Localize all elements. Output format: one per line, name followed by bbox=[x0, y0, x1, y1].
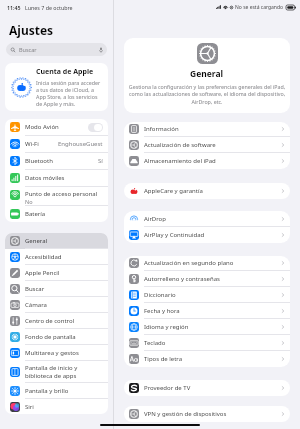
staticText: Siri bbox=[25, 403, 34, 411]
button[interactable]: Buscar bbox=[5, 281, 108, 296]
button[interactable]: Fecha y hora bbox=[124, 303, 290, 318]
staticText: Lunes 7 de octubre bbox=[25, 4, 73, 11]
staticText: AirDrop bbox=[144, 215, 281, 223]
button[interactable]: VPN y gestión de dispositivos bbox=[124, 406, 290, 422]
button[interactable]: Bluetooth bbox=[5, 153, 108, 169]
button[interactable]: Apple Pencil bbox=[5, 265, 108, 280]
button[interactable]: AppleCare y garantía bbox=[124, 183, 290, 199]
button[interactable]: General bbox=[5, 233, 108, 248]
button[interactable]: Modo Avión bbox=[5, 119, 108, 135]
button[interactable]: Teclado bbox=[124, 335, 290, 350]
staticText: Pantalla de inicio y biblioteca de apps bbox=[25, 364, 103, 380]
staticText: Apple Pencil bbox=[25, 269, 60, 277]
staticText: Accesibilidad bbox=[25, 253, 62, 261]
button[interactable]: Siri bbox=[5, 399, 108, 414]
button[interactable]: Wi-Fi bbox=[5, 136, 108, 152]
staticText: Pantalla y brillo bbox=[25, 387, 69, 395]
staticText: Diccionario bbox=[144, 291, 281, 299]
staticText: Teclado bbox=[144, 339, 281, 347]
staticText: Inicia sesión para acceder a tus datos d… bbox=[36, 79, 104, 107]
staticText: Sí bbox=[98, 157, 103, 165]
staticText: Idioma y región bbox=[144, 323, 281, 331]
button[interactable]: Proveedor de TV bbox=[124, 380, 290, 396]
staticText: Batería bbox=[25, 210, 46, 218]
staticText: Autorrelleno y contraseñas bbox=[144, 275, 281, 283]
staticText: Modo Avión bbox=[25, 123, 59, 131]
staticText: Proveedor de TV bbox=[144, 384, 281, 392]
button[interactable]: Fondo de pantalla bbox=[5, 329, 108, 344]
button[interactable]: Cámara bbox=[5, 297, 108, 312]
button[interactable]: Buscar bbox=[6, 43, 107, 56]
staticText: Actualización de software bbox=[144, 141, 281, 149]
staticText: Buscar bbox=[19, 46, 37, 53]
staticText: Buscar bbox=[25, 285, 45, 293]
button[interactable]: Idioma y región bbox=[124, 319, 290, 334]
button[interactable]: Autorrelleno y contraseñas bbox=[124, 271, 290, 286]
staticText: AppleCare y garantía bbox=[144, 187, 281, 195]
button[interactable]: Pantalla de inicio y biblioteca de apps bbox=[5, 361, 108, 382]
button[interactable]: Centro de control bbox=[5, 313, 108, 328]
staticText: AirPlay y Continuidad bbox=[144, 231, 281, 239]
button[interactable]: Punto de acceso personal bbox=[5, 187, 108, 205]
staticText: Fondo de pantalla bbox=[25, 333, 76, 341]
staticText: Información bbox=[144, 125, 281, 133]
staticText: General bbox=[190, 68, 224, 80]
staticText: EnghouseGuest bbox=[58, 140, 103, 148]
staticText: No bbox=[25, 198, 33, 205]
button[interactable]: AirPlay y Continuidad bbox=[124, 227, 290, 243]
button[interactable]: Pantalla y brillo bbox=[5, 383, 108, 398]
staticText: No se está cargando bbox=[235, 4, 284, 11]
staticText: Fecha y hora bbox=[144, 307, 281, 315]
staticText: Multitarea y gestos bbox=[25, 349, 79, 357]
staticText: General bbox=[25, 237, 48, 245]
staticText: 11:45 bbox=[7, 4, 21, 11]
staticText: Datos móviles bbox=[25, 174, 65, 182]
button[interactable]: Actualización en segundo plano bbox=[124, 256, 290, 270]
button[interactable]: Multitarea y gestos bbox=[5, 345, 108, 360]
staticText: Ajustes bbox=[9, 22, 54, 38]
button[interactable]: Cuenta de Apple bbox=[5, 63, 108, 111]
button[interactable]: Accesibilidad bbox=[5, 249, 108, 264]
button[interactable]: Información bbox=[124, 122, 290, 136]
button[interactable]: Actualización de software bbox=[124, 137, 290, 152]
staticText: Bluetooth bbox=[25, 157, 53, 165]
staticText: Cámara bbox=[25, 301, 47, 309]
staticText: Centro de control bbox=[25, 317, 75, 325]
staticText: Cuenta de Apple bbox=[36, 67, 94, 77]
staticText: Punto de acceso personal bbox=[25, 190, 98, 198]
staticText: Wi-Fi bbox=[25, 140, 39, 148]
staticText: Almacenamiento del iPad bbox=[144, 157, 281, 165]
button[interactable]: Batería bbox=[5, 206, 108, 222]
button[interactable]: AirDrop bbox=[124, 211, 290, 226]
staticText: Actualización en segundo plano bbox=[144, 259, 281, 267]
staticText: Tipos de letra bbox=[144, 355, 281, 363]
button[interactable]: Datos móviles bbox=[5, 170, 108, 186]
staticText: Gestiona la configuración y las preferen… bbox=[127, 83, 287, 105]
button[interactable]: Almacenamiento del iPad bbox=[124, 153, 290, 169]
button[interactable]: Tipos de letra bbox=[124, 351, 290, 367]
staticText: VPN y gestión de dispositivos bbox=[144, 410, 281, 418]
button[interactable]: Diccionario bbox=[124, 287, 290, 302]
